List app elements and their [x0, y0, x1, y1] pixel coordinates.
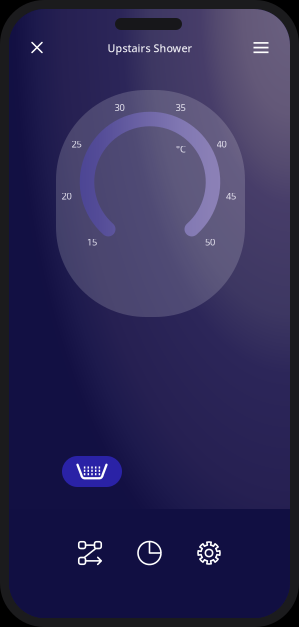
staticText: Upstairs Shower — [107, 41, 192, 55]
staticText: 45 — [226, 190, 236, 202]
staticText: 20 — [61, 190, 71, 202]
staticText: 25 — [71, 138, 81, 150]
staticText: 50 — [205, 236, 215, 248]
button[interactable]: Statistics — [127, 531, 171, 575]
button[interactable]: Shower — [62, 456, 122, 487]
staticText: 30 — [114, 101, 124, 114]
button[interactable]: Automations — [68, 531, 112, 575]
button[interactable]: Settings — [187, 531, 231, 575]
staticText: °C — [176, 143, 186, 155]
button[interactable]: Menu — [244, 31, 278, 65]
staticText: 15 — [87, 236, 97, 248]
button[interactable]: Close — [20, 30, 54, 64]
staticText: 40 — [216, 138, 226, 150]
staticText: 35 — [175, 101, 185, 114]
